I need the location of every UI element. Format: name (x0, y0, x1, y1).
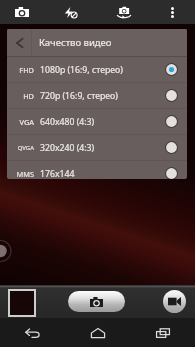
button[interactable]: QVGA (7, 135, 187, 160)
button[interactable]: Качество видео (7, 29, 187, 56)
staticText: Качество видео (39, 36, 112, 49)
button[interactable]: FHD (7, 57, 187, 82)
staticText: 640x480 (4:3) (40, 116, 95, 128)
staticText: FHD (13, 65, 34, 75)
staticText: VGA (13, 117, 34, 127)
button[interactable]: Record video (163, 290, 186, 313)
button[interactable]: More options (152, 0, 193, 24)
staticText: MMS (13, 169, 34, 179)
staticText: 720p (16:9, стерео) (40, 90, 118, 102)
staticText: 1080p (16:9, стерео) (40, 64, 123, 76)
button[interactable]: Back (0, 318, 65, 347)
button[interactable]: Take photo (68, 291, 125, 312)
button[interactable]: MMS (7, 161, 187, 179)
button[interactable]: Recent apps (130, 318, 195, 347)
button[interactable]: Flash off (48, 0, 93, 24)
button[interactable]: VGA (7, 109, 187, 134)
button[interactable]: HD (7, 83, 187, 108)
staticText: 320x240 (4:3) (40, 142, 95, 154)
staticText: 176x144 (40, 168, 75, 179)
staticText: QVGA (13, 144, 34, 152)
button[interactable]: Switch camera (101, 0, 146, 24)
staticText: HD (13, 91, 34, 101)
button[interactable]: Home (65, 318, 130, 347)
button[interactable]: Camera mode (2, 0, 42, 24)
